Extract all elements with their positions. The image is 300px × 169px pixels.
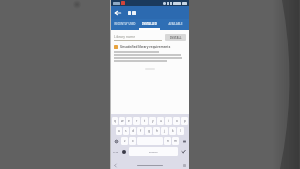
button[interactable]: ?123: [112, 147, 119, 156]
staticText: z: [124, 139, 126, 143]
button[interactable]: z: [121, 137, 128, 145]
button[interactable]: RECENTLY USED: [111, 19, 138, 28]
staticText: INSTALLED: [142, 22, 157, 26]
button[interactable]: Unsatisfied library requirements: [114, 45, 186, 49]
button[interactable]: f: [137, 127, 144, 135]
staticText: t: [144, 119, 146, 123]
button[interactable]: q: [112, 117, 118, 125]
button[interactable]: p: [181, 117, 188, 125]
button[interactable]: h: [153, 127, 160, 135]
staticText: m: [174, 139, 177, 143]
button[interactable]: w: [119, 117, 125, 125]
button[interactable]: AVAILABLE: [161, 19, 189, 28]
button[interactable]: y: [149, 117, 156, 125]
button[interactable]: INSTALLED: [138, 19, 161, 28]
button[interactable]: Back: [114, 9, 122, 17]
staticText: INSTALL: [170, 36, 182, 40]
button[interactable]: English: [129, 147, 178, 156]
staticText: English: [149, 150, 158, 153]
staticText: u: [160, 119, 162, 123]
staticText: y: [152, 119, 154, 123]
staticText: r: [136, 119, 138, 123]
button[interactable]: Backspace: [180, 137, 188, 145]
staticText: f: [140, 129, 142, 133]
button[interactable]: Emoji: [120, 147, 128, 156]
button[interactable]: Recents: [182, 163, 187, 168]
button[interactable]: e: [126, 117, 132, 125]
staticText: a: [118, 129, 120, 133]
staticText: p: [184, 119, 186, 123]
button[interactable]: u: [157, 117, 164, 125]
staticText: n: [167, 139, 169, 143]
button[interactable]: i: [165, 117, 172, 125]
button[interactable]: d: [130, 127, 136, 135]
staticText: i: [168, 119, 169, 123]
staticText: g: [148, 129, 150, 133]
button[interactable]: a: [116, 127, 122, 135]
button[interactable]: [128, 11, 136, 15]
button[interactable]: Back: [113, 163, 118, 168]
button[interactable]: o: [173, 117, 180, 125]
button[interactable]: g: [145, 127, 152, 135]
staticText: Unsatisfied library requirements: [120, 45, 171, 49]
staticText: s: [125, 129, 127, 133]
button[interactable]: j: [161, 127, 168, 135]
button[interactable]: l: [177, 127, 184, 135]
button[interactable]: m: [172, 137, 179, 145]
staticText: ?123: [113, 150, 119, 153]
button[interactable]: INSTALL: [165, 34, 186, 41]
button[interactable]: n: [164, 137, 171, 145]
button[interactable]: x: [129, 137, 136, 145]
staticText: k: [172, 129, 174, 133]
staticText: j: [164, 129, 165, 133]
button[interactable]: k: [169, 127, 176, 135]
staticText: Library name: [114, 34, 136, 39]
button[interactable]: Enter: [179, 147, 188, 156]
button[interactable]: Library name: [114, 34, 162, 41]
button[interactable]: t: [141, 117, 148, 125]
button[interactable]: r: [133, 117, 140, 125]
staticText: o: [176, 119, 178, 123]
staticText: RECENTLY USED: [114, 22, 136, 26]
staticText: d: [132, 129, 134, 133]
staticText: l: [180, 129, 181, 133]
staticText: q: [114, 119, 116, 123]
staticText: w: [121, 119, 124, 123]
staticText: e: [128, 119, 130, 123]
staticText: h: [156, 129, 158, 133]
staticText: x: [132, 139, 134, 143]
button[interactable]: s: [123, 127, 129, 135]
button[interactable]: Shift: [112, 137, 120, 145]
staticText: AVAILABLE: [168, 22, 183, 26]
